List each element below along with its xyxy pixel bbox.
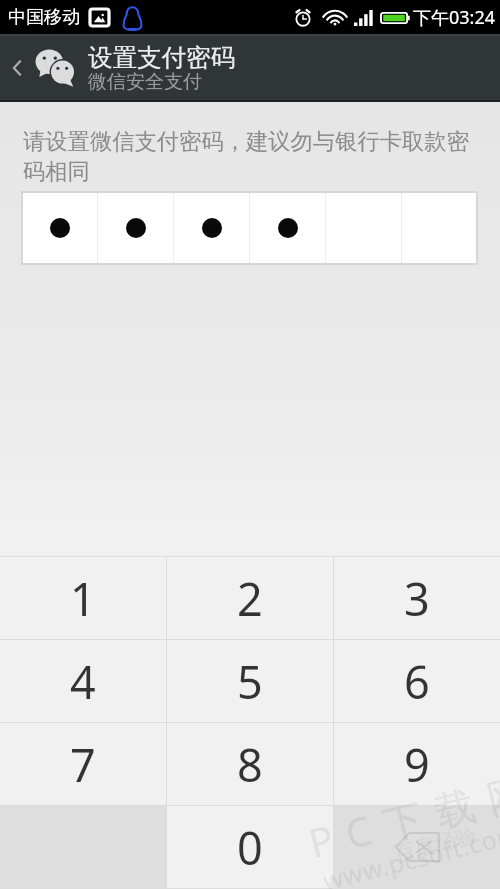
button[interactable]: 1: [0, 557, 166, 639]
button[interactable]: 2: [167, 557, 333, 639]
staticText: 微信安全支付: [88, 70, 202, 94]
button[interactable]: Delete: [334, 806, 500, 888]
staticText: 0: [237, 817, 263, 878]
button[interactable]: Back: [0, 34, 34, 102]
staticText: 5: [237, 651, 263, 712]
staticText: 8: [237, 734, 263, 795]
button[interactable]: 5: [167, 640, 333, 722]
staticText: 6: [404, 651, 430, 712]
staticText: 9: [404, 734, 430, 795]
staticText: 设置支付密码: [88, 42, 235, 73]
staticText: 1: [70, 568, 96, 629]
staticText: 4: [70, 651, 96, 712]
button[interactable]: 6: [334, 640, 500, 722]
staticText: 7: [70, 734, 96, 795]
staticText: 中国移动: [8, 6, 80, 29]
button[interactable]: 4: [0, 640, 166, 722]
button[interactable]: 8: [167, 723, 333, 805]
button[interactable]: 7: [0, 723, 166, 805]
button[interactable]: 9: [334, 723, 500, 805]
button[interactable]: 0: [167, 806, 333, 888]
staticText: 下午03:24: [413, 5, 496, 30]
button[interactable]: 3: [334, 557, 500, 639]
staticText: 2: [237, 568, 263, 629]
staticText: 3: [404, 568, 430, 629]
staticText: 请设置微信支付密码，建议勿与银行卡取款密码相同: [23, 128, 478, 186]
